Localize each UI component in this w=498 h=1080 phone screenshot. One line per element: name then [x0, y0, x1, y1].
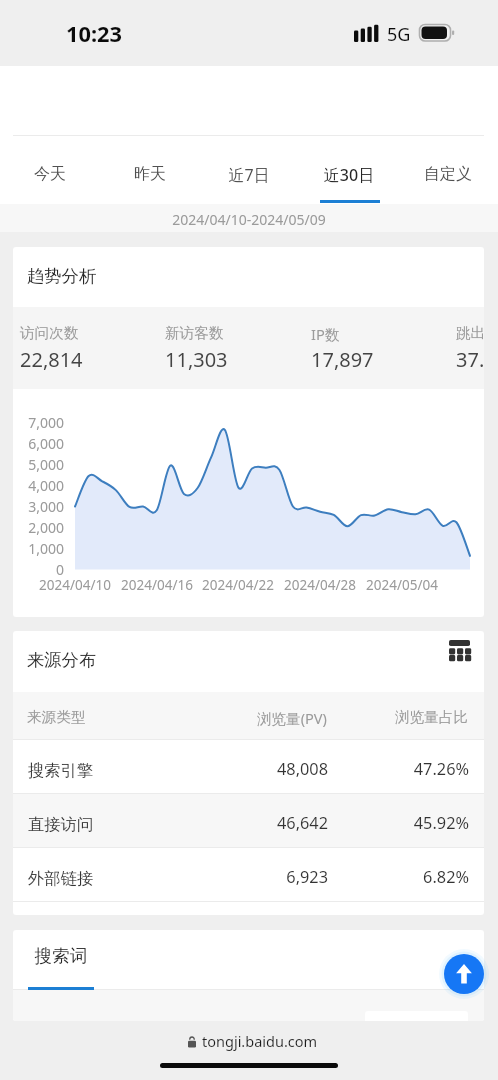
- staticText: 直接访问: [28, 814, 94, 835]
- staticText: 趋势分析: [27, 265, 97, 287]
- staticText: 搜索词: [28, 945, 94, 967]
- staticText: 1,000: [4, 539, 64, 558]
- staticText: 新访客数: [165, 324, 224, 342]
- staticText: 2024/04/10: [15, 576, 135, 594]
- staticText: 2024/05/04: [342, 576, 462, 594]
- staticText: 45.92%: [309, 812, 469, 834]
- staticText: 11,303: [165, 346, 228, 373]
- staticText: 来源分布: [27, 649, 97, 671]
- button[interactable]: 直接访问: [13, 794, 484, 848]
- staticText: 46,642: [168, 812, 328, 834]
- staticText: tongji.baidu.com: [202, 1031, 318, 1051]
- staticText: 浏览量占比: [308, 708, 468, 726]
- staticText: 今天: [0, 164, 100, 184]
- staticText: 17,897: [311, 346, 374, 373]
- staticText: 47.26%: [309, 758, 469, 780]
- staticText: 48,008: [168, 758, 328, 780]
- staticText: 2024/04/28: [260, 576, 380, 594]
- staticText: 10:23: [66, 19, 122, 49]
- button[interactable]: Back to top: [444, 954, 484, 994]
- staticText: 6,000: [4, 434, 64, 453]
- button[interactable]: 近30日: [299, 150, 399, 195]
- staticText: 近7日: [199, 164, 299, 186]
- staticText: 自定义: [398, 164, 498, 184]
- staticText: 7,000: [4, 413, 64, 432]
- staticText: 2,000: [4, 518, 64, 537]
- staticText: IP数: [311, 324, 340, 344]
- staticText: 2024/04/22: [178, 576, 298, 594]
- staticText: 2024/04/16: [97, 576, 217, 594]
- staticText: 昨天: [100, 164, 200, 184]
- button[interactable]: 自定义: [398, 150, 498, 195]
- staticText: 浏览量(PV): [167, 708, 327, 728]
- staticText: 6.82%: [309, 866, 469, 888]
- staticText: 跳出率: [456, 324, 484, 342]
- staticText: 5,000: [4, 455, 64, 474]
- staticText: 来源类型: [27, 708, 86, 726]
- button[interactable]: 搜索词: [28, 930, 94, 989]
- staticText: 访问次数: [20, 324, 79, 342]
- staticText: 近30日: [299, 164, 399, 186]
- button[interactable]: 昨天: [100, 150, 200, 195]
- button[interactable]: Switch to table view: [438, 630, 480, 672]
- button[interactable]: 搜索引擎: [13, 740, 484, 794]
- staticText: 搜索引擎: [28, 760, 94, 781]
- button[interactable]: 今天: [0, 150, 100, 195]
- staticText: 37.4%: [456, 346, 484, 373]
- staticText: 6,923: [168, 866, 328, 888]
- staticText: 2024/04/10-2024/05/09: [49, 210, 449, 229]
- staticText: 22,814: [20, 346, 83, 373]
- staticText: 3,000: [4, 497, 64, 516]
- staticText: 0: [4, 560, 64, 579]
- staticText: 外部链接: [28, 868, 94, 889]
- button[interactable]: 外部链接: [13, 848, 484, 902]
- button[interactable]: 近7日: [199, 150, 299, 195]
- staticText: 4,000: [4, 476, 64, 495]
- staticText: 5G: [387, 22, 411, 47]
